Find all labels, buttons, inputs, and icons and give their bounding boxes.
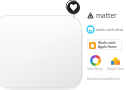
button[interactable]: Secure badge bbox=[67, 1, 80, 14]
staticText: Google Home bbox=[107, 67, 124, 71]
button[interactable]: Product photo bbox=[0, 15, 84, 90]
button[interactable]: Works with Alexa bbox=[87, 25, 126, 34]
staticText: matter bbox=[96, 11, 117, 20]
button[interactable]: SmartThings bbox=[90, 55, 101, 66]
other: Works with Alexa bbox=[87, 26, 94, 33]
staticText: works with alexa bbox=[96, 27, 124, 32]
staticText: Works with bbox=[98, 41, 116, 45]
other: Matter bbox=[87, 12, 94, 19]
button[interactable]: Matter bbox=[87, 11, 126, 20]
button[interactable]: Google Home bbox=[110, 55, 121, 66]
staticText: SmartThings bbox=[87, 67, 103, 71]
other: Apple Home bbox=[89, 42, 96, 49]
button[interactable]: Apple Home bbox=[87, 39, 122, 50]
staticText: Apple Home bbox=[98, 45, 117, 49]
staticText: Requires compatible hub bbox=[87, 77, 120, 81]
